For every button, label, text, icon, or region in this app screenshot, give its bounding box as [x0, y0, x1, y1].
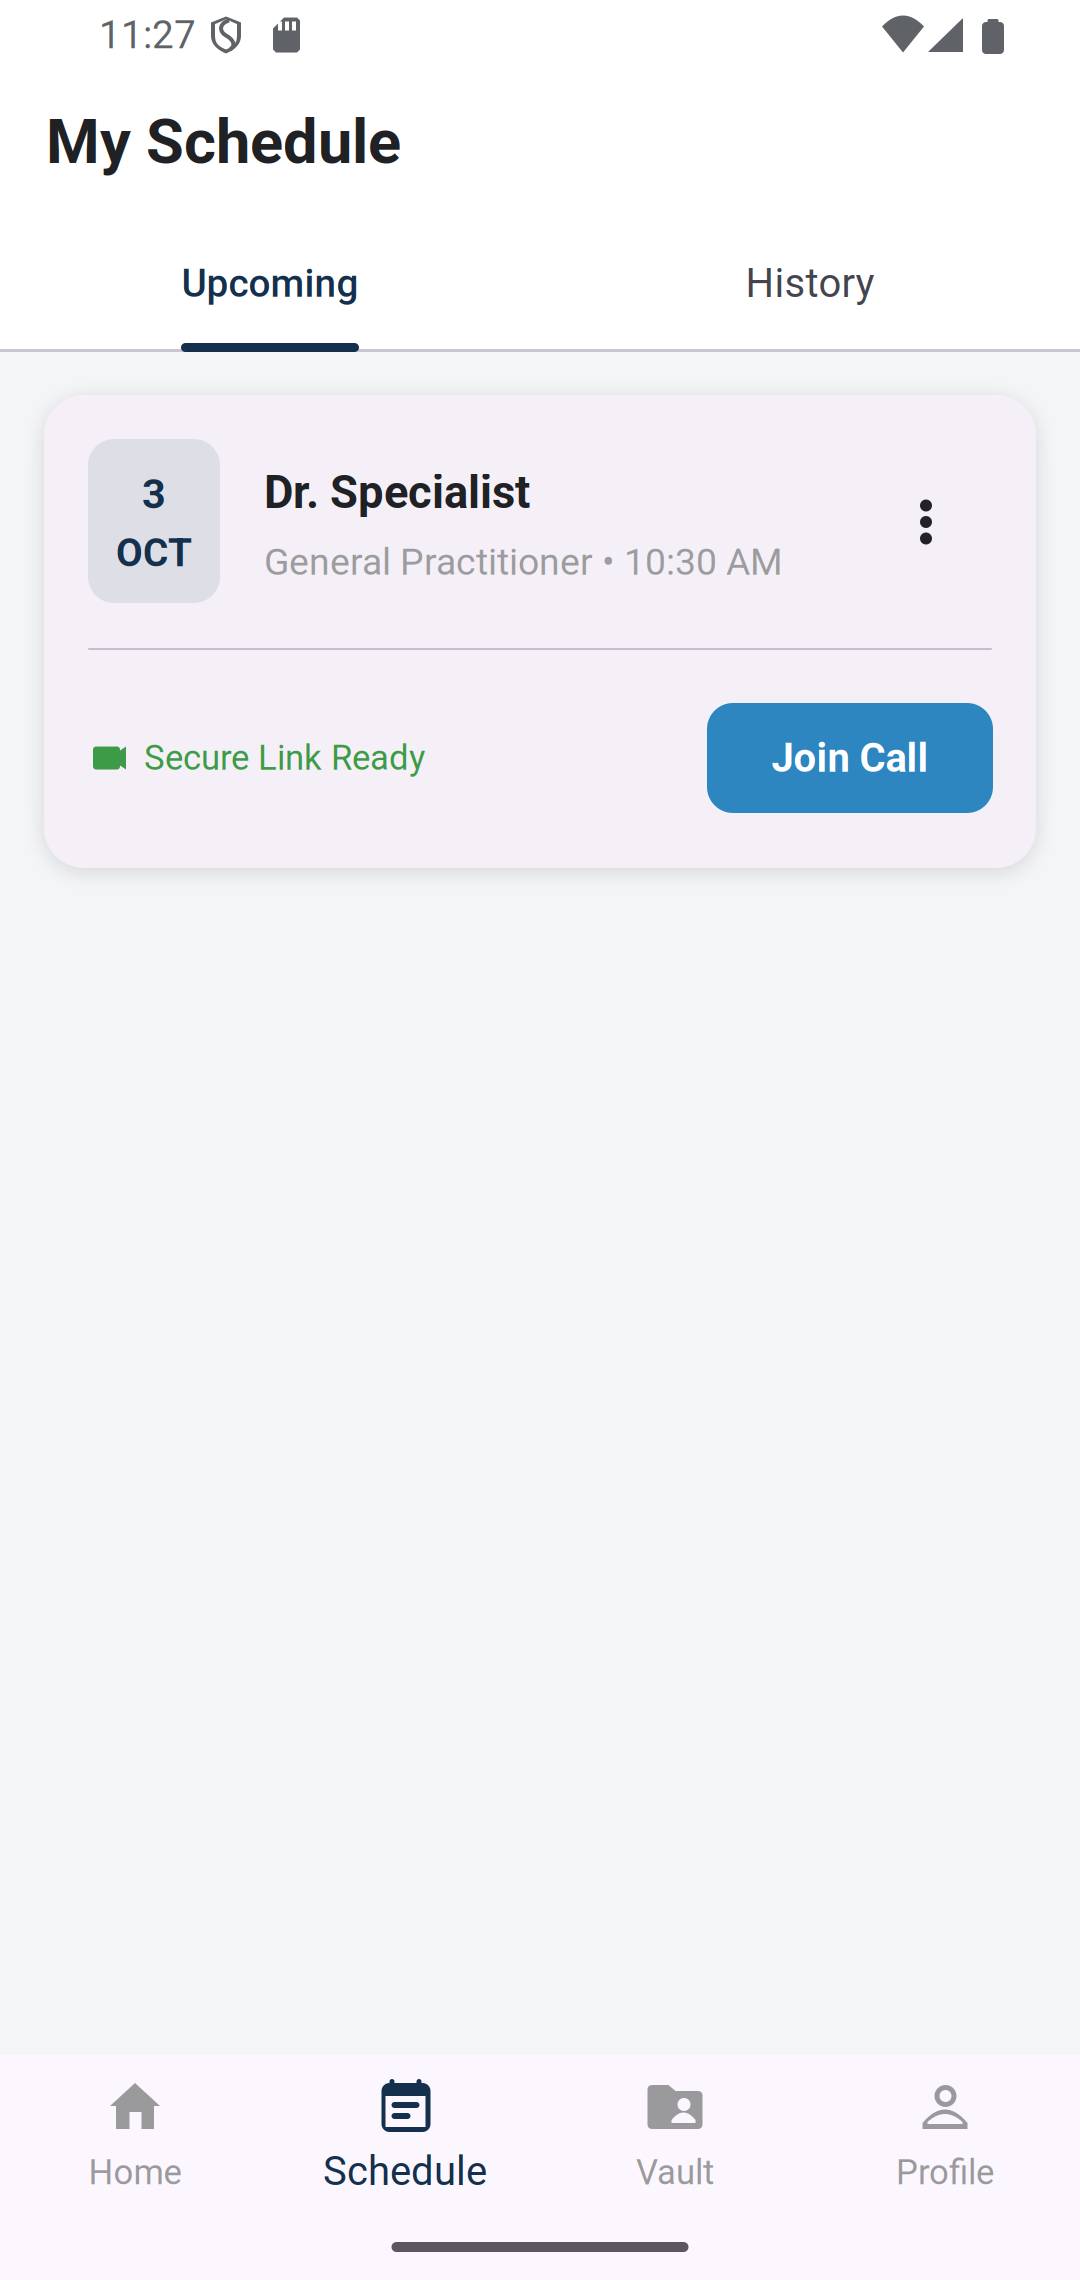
- staticText: My Schedule: [46, 106, 401, 178]
- staticText: Join Call: [771, 735, 928, 781]
- button[interactable]: Schedule: [270, 2077, 540, 2205]
- button[interactable]: History: [540, 205, 1080, 349]
- staticText: General Practitioner • 10:30 AM: [264, 540, 783, 584]
- staticText: Upcoming: [181, 261, 358, 306]
- staticText: Home: [88, 2152, 181, 2193]
- staticText: 11:27: [99, 12, 196, 58]
- button[interactable]: Profile: [810, 2077, 1080, 2205]
- button[interactable]: More options: [878, 463, 974, 581]
- staticText: OCT: [116, 530, 192, 576]
- button[interactable]: Home: [0, 2077, 270, 2205]
- staticText: Profile: [896, 2152, 994, 2193]
- button[interactable]: Join Call: [707, 703, 993, 813]
- staticText: Schedule: [323, 2148, 487, 2195]
- staticText: History: [745, 260, 874, 307]
- staticText: Dr. Specialist: [264, 466, 530, 519]
- staticText: 3: [142, 470, 166, 518]
- staticText: Vault: [636, 2152, 714, 2193]
- staticText: Secure Link Ready: [144, 738, 425, 778]
- button[interactable]: Upcoming: [0, 205, 540, 349]
- button[interactable]: Vault: [540, 2077, 810, 2205]
